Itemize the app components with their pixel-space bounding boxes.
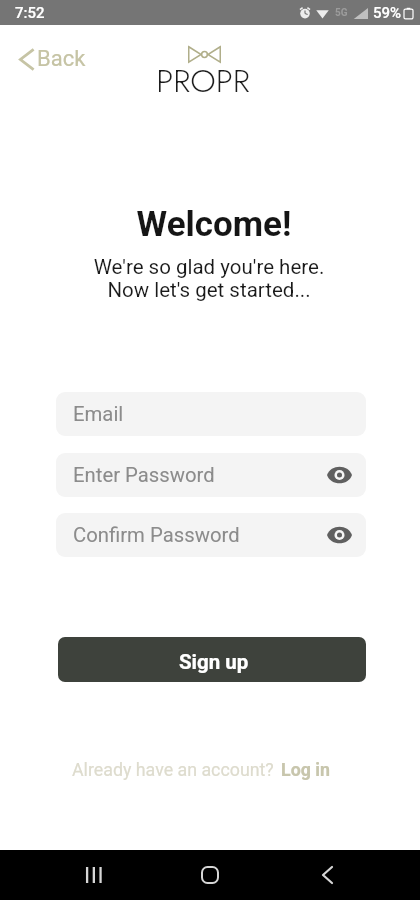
button[interactable]: Back xyxy=(307,855,347,895)
staticText: 5G xyxy=(335,7,348,19)
button[interactable]: Show password xyxy=(327,526,352,544)
staticText: Already have an account? xyxy=(72,759,274,780)
staticText: Welcome! xyxy=(4,204,420,245)
button[interactable]: Confirm Password xyxy=(56,513,366,557)
button[interactable]: Enter Password xyxy=(56,453,366,497)
button[interactable]: Email xyxy=(56,392,366,436)
staticText: Back xyxy=(37,46,86,72)
staticText: 59% xyxy=(373,4,402,22)
staticText: PROPR xyxy=(0,57,413,104)
button[interactable]: Back xyxy=(15,42,90,76)
button[interactable]: Log in xyxy=(281,759,330,780)
staticText: 7:52 xyxy=(15,4,45,22)
staticText: Email xyxy=(73,402,124,426)
staticText: Confirm Password xyxy=(73,523,240,547)
button[interactable]: Recent apps xyxy=(73,855,113,895)
staticText: We're so glad you're here. Now let's get… xyxy=(0,255,419,302)
button[interactable]: Home xyxy=(190,855,230,895)
staticText: Log in xyxy=(281,759,330,780)
button[interactable]: Sign up xyxy=(58,637,366,682)
staticText: Sign up xyxy=(179,650,249,674)
staticText: Enter Password xyxy=(73,463,215,487)
button[interactable]: Show password xyxy=(327,466,352,484)
